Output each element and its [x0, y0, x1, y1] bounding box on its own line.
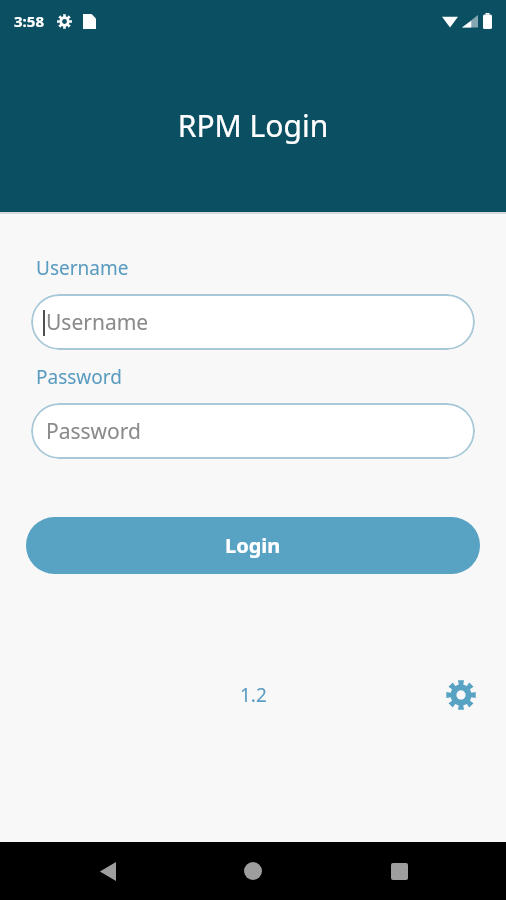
staticText: Password	[36, 364, 122, 390]
button[interactable]: Username	[31, 294, 475, 350]
staticText: Username	[36, 255, 129, 281]
staticText: Password	[46, 417, 141, 446]
button[interactable]: Login	[26, 517, 480, 574]
staticText: Login	[225, 532, 281, 559]
button[interactable]: Recent apps	[375, 847, 423, 895]
button[interactable]: 1.2	[240, 682, 267, 708]
button[interactable]: Settings	[440, 674, 482, 716]
staticText: Username	[46, 308, 149, 337]
button[interactable]: Password	[31, 403, 475, 459]
button[interactable]: Home	[229, 847, 277, 895]
staticText: 3:58	[14, 11, 44, 31]
button[interactable]: Back	[83, 847, 131, 895]
staticText: RPM Login	[0, 105, 506, 146]
